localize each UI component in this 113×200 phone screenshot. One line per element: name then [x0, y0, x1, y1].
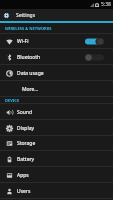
button[interactable]: More...	[0, 81, 113, 97]
button[interactable]: Sound	[0, 104, 113, 120]
button[interactable]: Storage	[0, 136, 113, 151]
staticText: Display	[17, 125, 35, 132]
button[interactable]: Wi-Fi	[0, 34, 113, 49]
staticText: Bluetooth	[17, 54, 41, 61]
button[interactable]: Apps	[0, 167, 113, 183]
staticText: Wi-Fi	[17, 38, 29, 45]
staticText: WIRELESS & NETWORKS	[5, 26, 52, 31]
button[interactable]: Battery	[0, 151, 113, 167]
staticText: Apps	[17, 172, 29, 179]
staticText: Data usage	[17, 70, 44, 77]
staticText: Storage	[17, 140, 36, 147]
button[interactable]: Toggle off	[85, 54, 104, 61]
button[interactable]: Settings title	[0, 9, 113, 21]
staticText: Settings	[16, 12, 36, 19]
staticText: Users	[17, 188, 31, 195]
staticText: 5:38	[101, 1, 111, 8]
staticText: Sound	[17, 109, 33, 116]
staticText: DEVICE	[5, 98, 20, 103]
button[interactable]: Bluetooth	[0, 49, 113, 65]
button[interactable]: Toggle on	[85, 38, 104, 45]
button[interactable]: Display	[0, 120, 113, 136]
staticText: More...	[22, 86, 39, 93]
button[interactable]: Users	[0, 183, 113, 199]
button[interactable]: Data usage	[0, 65, 113, 81]
staticText: Battery	[17, 156, 35, 163]
